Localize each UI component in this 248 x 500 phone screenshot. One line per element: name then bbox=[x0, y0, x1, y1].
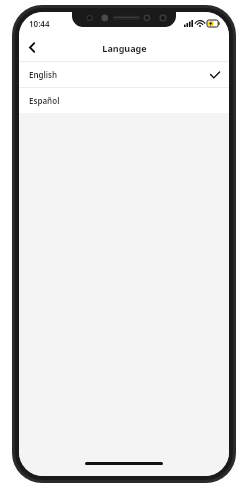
button[interactable]: Back bbox=[19, 34, 45, 61]
staticText: 10:44 bbox=[29, 18, 50, 29]
staticText: Language bbox=[102, 42, 147, 54]
button[interactable]: Español bbox=[19, 88, 229, 113]
staticText: Español bbox=[29, 95, 60, 106]
staticText: English bbox=[29, 69, 58, 80]
button[interactable]: English bbox=[19, 62, 229, 87]
